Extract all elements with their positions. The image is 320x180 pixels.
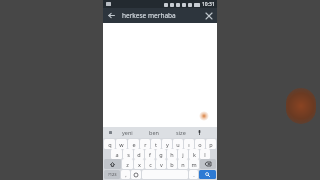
button[interactable]: h [167, 149, 177, 159]
staticText: x [138, 161, 141, 168]
staticText: t [155, 141, 157, 148]
staticText: q [108, 141, 112, 148]
button[interactable]: s [123, 149, 133, 159]
staticText: herkese merhaba [122, 11, 176, 20]
staticText: y [166, 141, 169, 148]
staticText: m [191, 161, 197, 168]
button[interactable]: f [145, 149, 155, 159]
staticText: n [181, 161, 185, 168]
button[interactable]: d [134, 149, 144, 159]
button[interactable]: j [178, 149, 188, 159]
button[interactable]: , [121, 170, 130, 179]
staticText: ı [188, 141, 190, 148]
staticText: j [182, 151, 184, 158]
button[interactable]: Clear [202, 9, 215, 22]
button[interactable]: o [195, 139, 205, 149]
button[interactable]: p [206, 139, 216, 149]
button[interactable]: g [156, 149, 166, 159]
button[interactable]: m [189, 159, 199, 169]
staticText: , [125, 171, 127, 178]
button[interactable]: Symbols [104, 170, 120, 179]
button[interactable]: Back [105, 9, 118, 22]
staticText: d [137, 151, 141, 158]
staticText: c [149, 161, 152, 168]
button[interactable]: c [145, 159, 155, 169]
staticText: p [209, 141, 213, 148]
staticText: l [204, 151, 206, 158]
staticText: s [127, 151, 130, 158]
staticText: g [159, 151, 163, 158]
button[interactable]: x [134, 159, 144, 169]
staticText: k [193, 151, 196, 158]
button[interactable]: yeni [114, 127, 140, 138]
button[interactable]: a [111, 149, 122, 159]
staticText: e [132, 141, 136, 148]
button[interactable]: y [162, 139, 172, 149]
button[interactable]: Clipboard [106, 127, 114, 138]
staticText: size [176, 129, 186, 136]
button[interactable]: size [167, 127, 194, 138]
button[interactable]: Search [199, 170, 216, 179]
button[interactable]: Backspace [200, 159, 216, 169]
staticText: r [144, 141, 147, 148]
button[interactable]: l [200, 149, 210, 159]
button[interactable]: v [156, 159, 166, 169]
button[interactable]: b [167, 159, 177, 169]
staticText: o [198, 141, 202, 148]
staticText: . [193, 171, 195, 178]
button[interactable]: k [189, 149, 199, 159]
staticText: a [115, 151, 119, 158]
staticText: h [170, 151, 174, 158]
staticText: yeni [122, 129, 133, 136]
button[interactable]: t [151, 139, 161, 149]
staticText: ben [149, 129, 159, 136]
button[interactable]: . [189, 170, 198, 179]
button[interactable]: ı [184, 139, 194, 149]
staticText: z [126, 161, 129, 168]
staticText: f [149, 151, 151, 158]
staticText: ?123 [108, 172, 117, 177]
button[interactable]: q [104, 139, 115, 149]
staticText: u [176, 141, 180, 148]
button[interactable]: r [140, 139, 150, 149]
staticText: b [170, 161, 174, 168]
button[interactable]: Shift [104, 159, 121, 169]
button[interactable]: Voice input [194, 127, 204, 138]
staticText: v [160, 161, 163, 168]
button[interactable]: u [173, 139, 183, 149]
button[interactable]: e [128, 139, 139, 149]
button[interactable]: ben [140, 127, 167, 138]
staticText: 10:31 [202, 1, 215, 8]
staticText: w [119, 141, 124, 148]
button[interactable]: n [178, 159, 188, 169]
button[interactable]: w [116, 139, 127, 149]
button[interactable]: z [122, 159, 133, 169]
button[interactable]: Emoji [131, 170, 141, 179]
